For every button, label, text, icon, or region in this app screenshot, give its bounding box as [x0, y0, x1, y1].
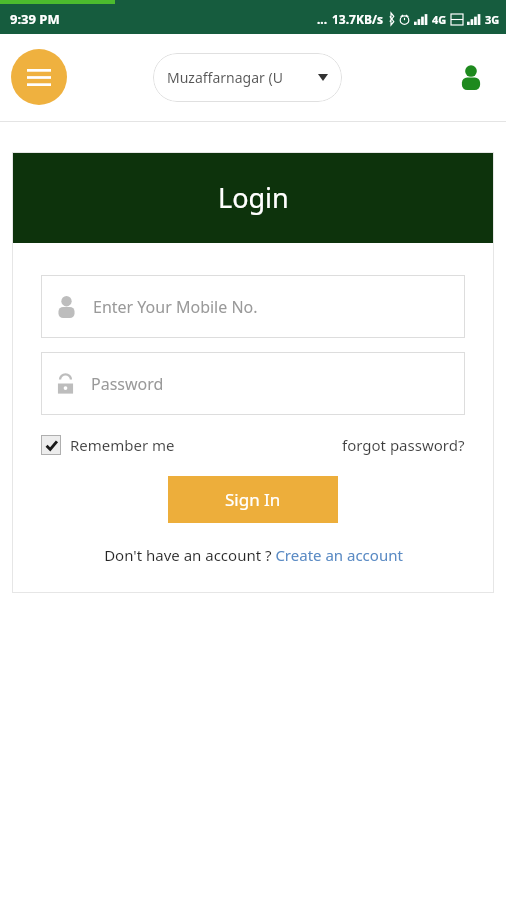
- staticText: Remember me: [70, 435, 175, 455]
- button[interactable]: Password: [41, 352, 465, 415]
- button[interactable]: Don't have an account ? Create an accoun…: [41, 545, 465, 565]
- staticText: forgot password?: [342, 435, 465, 455]
- staticText: Password: [91, 373, 164, 395]
- staticText: Muzaffarnagar (U: [167, 68, 318, 87]
- staticText: ...: [317, 11, 328, 27]
- button[interactable]: Enter Your Mobile No.: [41, 275, 465, 338]
- staticText: Don't have an account ? Create an accoun…: [104, 545, 403, 565]
- button[interactable]: Sign In: [168, 476, 338, 523]
- button[interactable]: Menu: [11, 49, 67, 105]
- button[interactable]: Muzaffarnagar (U: [153, 53, 342, 102]
- staticText: 13.7KB/s: [332, 11, 383, 27]
- staticText: Sign In: [225, 488, 281, 511]
- button[interactable]: Profile: [450, 56, 492, 98]
- button[interactable]: Remember me: [41, 435, 175, 455]
- button[interactable]: forgot password?: [342, 435, 465, 455]
- staticText: 3G: [485, 12, 500, 27]
- staticText: 9:39 PM: [10, 10, 60, 28]
- staticText: Enter Your Mobile No.: [93, 296, 258, 318]
- staticText: Login: [218, 179, 289, 216]
- staticText: 4G: [432, 12, 447, 27]
